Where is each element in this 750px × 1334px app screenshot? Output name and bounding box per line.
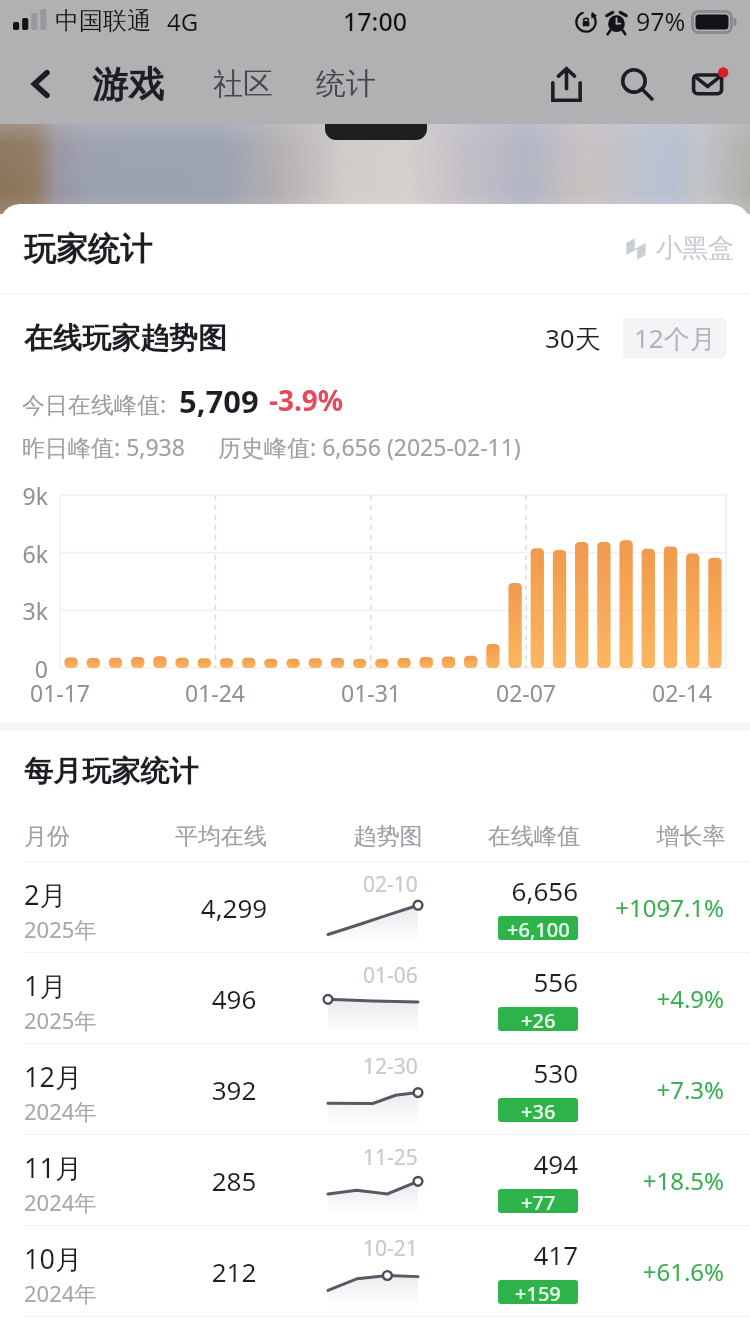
staticText: 2024年 (24, 1278, 97, 1308)
staticText: 212 (184, 1254, 284, 1289)
staticText: +61.6% (584, 1255, 724, 1288)
staticText: 今日在线峰值: (22, 388, 167, 419)
button[interactable]: Back (8, 48, 74, 120)
staticText: 02-07 (481, 677, 571, 708)
staticText: 556 (458, 964, 578, 999)
staticText: 30天 (545, 320, 601, 356)
staticText: 496 (184, 981, 284, 1016)
staticText: +18.5% (584, 1164, 724, 1197)
staticText: 0 (0, 653, 48, 684)
staticText: 02-10 (363, 870, 418, 899)
staticText: 01-06 (363, 961, 418, 990)
staticText: 每月玩家统计 (24, 753, 198, 790)
staticText: 9k (0, 480, 48, 511)
staticText: 17:00 (343, 4, 408, 38)
staticText: +26 (521, 1007, 556, 1031)
staticText: 6k (0, 538, 48, 569)
staticText: 01-17 (15, 677, 105, 708)
staticText: 01-24 (170, 677, 260, 708)
staticText: 12个月 (634, 320, 716, 356)
staticText: 玩家统计 (24, 229, 152, 269)
staticText: 昨日峰值: 5,938 (22, 431, 185, 462)
staticText: 6,656 (458, 873, 578, 908)
button[interactable]: 游戏 (84, 52, 172, 117)
staticText: +36 (521, 1098, 556, 1122)
button[interactable]: 统计 (308, 53, 384, 115)
staticText: 4G (167, 5, 199, 38)
button[interactable]: 12月 (0, 1044, 750, 1134)
staticText: 530 (458, 1055, 578, 1090)
staticText: 285 (184, 1163, 284, 1198)
staticText: +6,100 (507, 916, 570, 940)
staticText: 417 (458, 1237, 578, 1272)
staticText: 5,709 (179, 380, 259, 422)
staticText: 2024年 (24, 1096, 97, 1126)
staticText: 趋势图 (352, 822, 424, 851)
button[interactable]: Messages (675, 49, 745, 119)
staticText: +159 (515, 1280, 561, 1304)
staticText: 在线玩家趋势图 (24, 320, 227, 357)
staticText: +4.9% (584, 982, 724, 1015)
staticText: +1097.1% (584, 891, 724, 924)
staticText: -3.9% (269, 381, 344, 419)
staticText: 2025年 (24, 1005, 97, 1035)
staticText: 平均在线 (174, 822, 268, 851)
staticText: 02-14 (637, 677, 727, 708)
button[interactable]: Share (531, 49, 601, 119)
staticText: 增长率 (656, 822, 726, 851)
staticText: 01-31 (326, 677, 416, 708)
staticText: 游戏 (92, 62, 164, 107)
staticText: 中国联通 (55, 6, 151, 36)
button[interactable]: 社区 (205, 53, 281, 115)
staticText: 4,299 (184, 890, 284, 925)
staticText: 历史峰值: 6,656 (2025-02-11) (218, 431, 521, 462)
staticText: 2024年 (24, 1187, 97, 1217)
staticText: +7.3% (584, 1073, 724, 1106)
staticText: 10-21 (363, 1234, 418, 1263)
button[interactable]: 12个月 (623, 318, 727, 358)
staticText: 494 (458, 1146, 578, 1181)
button[interactable]: Search (602, 49, 672, 119)
staticText: 3k (0, 595, 48, 626)
staticText: 在线峰值 (488, 822, 580, 851)
staticText: 小黑盒 (656, 232, 734, 265)
staticText: 12月 (24, 1058, 82, 1095)
staticText: 11月 (24, 1149, 82, 1186)
staticText: 统计 (316, 65, 376, 103)
staticText: 12-30 (363, 1052, 418, 1081)
staticText: 2月 (24, 876, 67, 913)
staticText: 97% (636, 4, 686, 38)
button[interactable]: 30天 (522, 318, 623, 358)
button[interactable]: 10月 (0, 1226, 750, 1316)
staticText: 社区 (213, 65, 273, 103)
staticText: 1月 (24, 967, 67, 1004)
staticText: 392 (184, 1072, 284, 1107)
button[interactable]: 1月 (0, 953, 750, 1043)
staticText: 10月 (24, 1240, 82, 1277)
button[interactable]: 11月 (0, 1135, 750, 1225)
staticText: +77 (521, 1189, 556, 1213)
staticText: 月份 (24, 822, 124, 851)
button[interactable]: 2月 (0, 862, 750, 952)
staticText: 2025年 (24, 914, 97, 944)
staticText: 11-25 (363, 1143, 418, 1172)
